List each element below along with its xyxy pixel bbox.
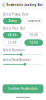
button[interactable]: Confirm Reschedule bbox=[3, 84, 43, 93]
button[interactable]: 10:00 bbox=[24, 32, 43, 38]
staticText: Reschedule Loading Slot bbox=[6, 3, 42, 7]
button[interactable]: Back bbox=[1, 2, 6, 8]
staticText: Select Dock Number bbox=[3, 58, 31, 62]
staticText: Select Duration bbox=[3, 48, 25, 52]
staticText: 10:00 bbox=[29, 33, 38, 37]
staticText: Tomorrow bbox=[27, 19, 40, 23]
staticText: Select Pickup Date bbox=[3, 13, 29, 16]
button[interactable]: 14:00 bbox=[24, 40, 43, 46]
button[interactable]: Tomorrow bbox=[24, 18, 43, 24]
button[interactable]: 08:00 bbox=[3, 32, 21, 38]
staticText: 08:00 bbox=[8, 33, 17, 37]
staticText: 12:00 bbox=[8, 41, 17, 44]
staticText: Select Time Slot bbox=[3, 27, 25, 30]
staticText: 14:00 bbox=[29, 41, 38, 44]
button[interactable]: 12:00 bbox=[3, 40, 21, 46]
staticText: Today bbox=[8, 19, 16, 23]
button[interactable]: Today bbox=[3, 18, 21, 24]
staticText: Confirm Reschedule bbox=[8, 87, 38, 91]
